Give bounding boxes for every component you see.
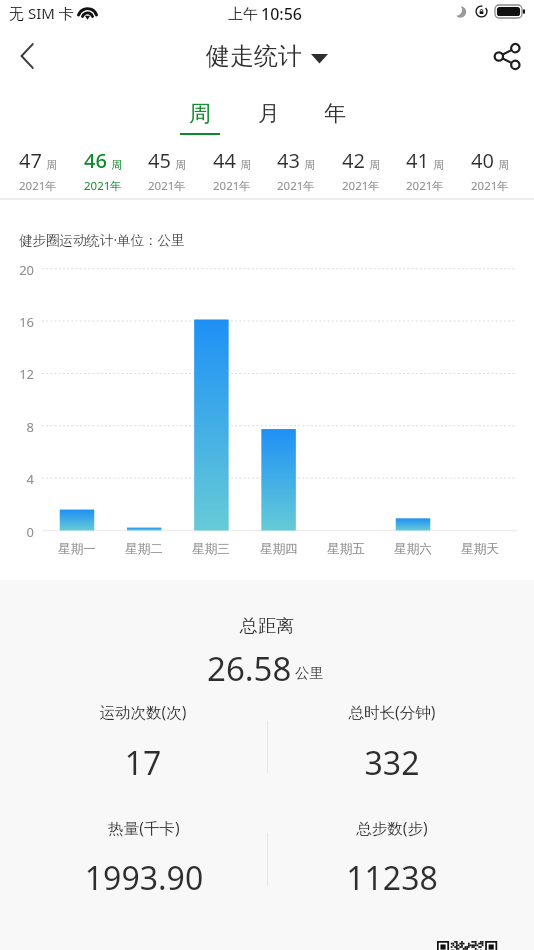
staticText: 周: [433, 158, 444, 172]
staticText: 健步圈运动统计·单位：公里: [19, 231, 185, 249]
button[interactable]: Back: [2, 30, 52, 82]
staticText: 2021年: [84, 178, 122, 194]
button[interactable]: 42: [329, 147, 393, 194]
staticText: 16: [6, 313, 34, 331]
staticText: 总距离: [0, 615, 534, 638]
staticText: 星期天: [447, 541, 513, 557]
staticText: 46: [84, 147, 107, 174]
button[interactable]: 40: [458, 147, 522, 194]
staticText: 周: [498, 158, 509, 172]
button[interactable]: 周: [174, 95, 226, 140]
button[interactable]: 健走统计: [206, 41, 328, 71]
button[interactable]: 44: [200, 147, 264, 194]
staticText: 17: [53, 741, 233, 785]
button[interactable]: 月: [243, 95, 295, 140]
button[interactable]: 总步数(步): [302, 817, 482, 900]
staticText: 上午: [228, 5, 258, 24]
staticText: 11238: [302, 856, 482, 900]
staticText: 周: [175, 158, 186, 172]
staticText: 星期三: [178, 541, 244, 557]
button[interactable]: 41: [393, 147, 457, 194]
staticText: 总步数(步): [302, 817, 482, 838]
staticText: 4: [6, 470, 34, 488]
staticText: 2021年: [406, 178, 444, 194]
staticText: 43: [277, 147, 300, 174]
staticText: 年: [324, 100, 346, 128]
staticText: 无 SIM 卡: [9, 3, 74, 23]
button[interactable]: 45: [135, 147, 199, 194]
staticText: 2021年: [148, 178, 186, 194]
staticText: 1993.90: [54, 856, 234, 900]
staticText: 星期一: [44, 541, 110, 557]
staticText: 公里: [295, 664, 324, 682]
button[interactable]: 46: [71, 147, 135, 194]
staticText: 运动次数(次): [53, 701, 233, 722]
staticText: 热量(千卡): [54, 817, 234, 838]
staticText: 2021年: [277, 178, 315, 194]
staticText: 40: [471, 147, 494, 174]
staticText: 月: [258, 100, 280, 128]
staticText: 2021年: [213, 178, 251, 194]
button[interactable]: 43: [264, 147, 328, 194]
staticText: 45: [148, 147, 171, 174]
staticText: 42: [342, 147, 365, 174]
staticText: 0: [6, 523, 34, 541]
button[interactable]: 总时长(分钟): [302, 701, 482, 785]
staticText: 12: [6, 365, 34, 383]
staticText: 2021年: [19, 178, 57, 194]
staticText: 周: [46, 158, 57, 172]
button[interactable]: 热量(千卡): [54, 817, 234, 900]
staticText: 星期二: [111, 541, 177, 557]
button[interactable]: Share: [484, 30, 530, 82]
staticText: 47: [19, 147, 42, 174]
staticText: 332: [302, 741, 482, 785]
staticText: 44: [213, 147, 236, 174]
button[interactable]: 年: [309, 95, 361, 140]
staticText: 8: [6, 418, 34, 436]
staticText: 星期六: [380, 541, 446, 557]
staticText: 26.58: [207, 646, 292, 691]
staticText: 2021年: [342, 178, 380, 194]
staticText: 周: [240, 158, 251, 172]
staticText: 2021年: [471, 178, 509, 194]
staticText: 10:56: [261, 3, 302, 25]
button[interactable]: 47: [6, 147, 70, 194]
staticText: 星期四: [246, 541, 312, 557]
staticText: 周: [111, 158, 122, 172]
staticText: 健走统计: [206, 41, 302, 71]
staticText: 周: [189, 100, 211, 128]
staticText: 20: [6, 261, 34, 279]
staticText: 周: [369, 158, 380, 172]
staticText: 星期五: [313, 541, 379, 557]
staticText: 总时长(分钟): [302, 701, 482, 722]
staticText: 周: [304, 158, 315, 172]
staticText: 41: [406, 147, 429, 174]
button[interactable]: 运动次数(次): [53, 701, 233, 785]
